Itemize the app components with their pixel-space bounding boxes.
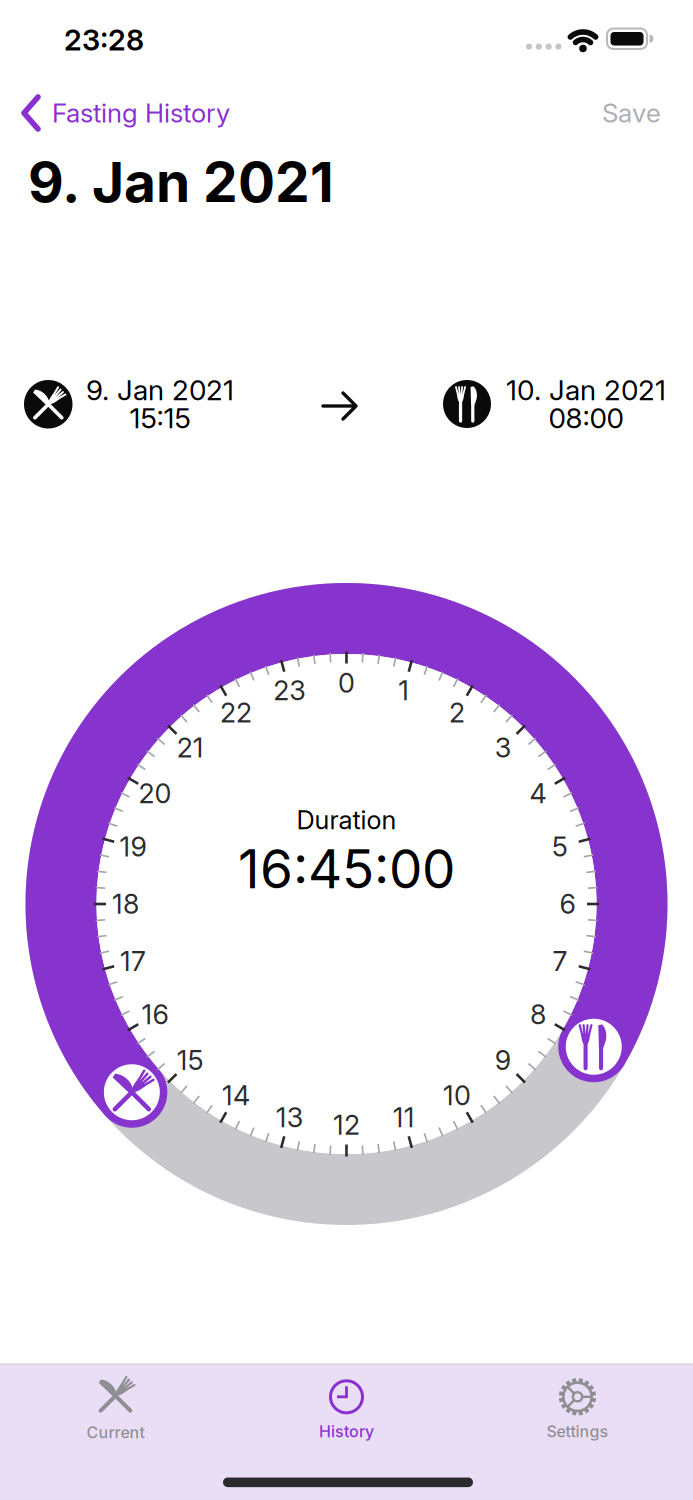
staticText: 20 [139,777,172,810]
staticText: 23:28 [64,22,144,58]
staticText: 5 [552,830,568,863]
staticText: 17 [120,945,146,978]
staticText: Fasting History [52,97,230,129]
staticText: 21 [177,731,204,764]
staticText: 13 [276,1101,303,1134]
staticText: 9. Jan 2021 [28,149,334,215]
staticText: 19 [119,830,146,863]
button[interactable] [566,1019,622,1075]
staticText: 0 [338,667,355,699]
button[interactable]: Settings [546,1377,608,1441]
button[interactable]: Current [86,1376,144,1442]
button[interactable]: Fasting History [21,95,230,131]
staticText: 16 [142,998,169,1031]
staticText: 3 [495,731,511,764]
staticText: 7 [552,945,567,978]
staticText: 16:45:00 [238,837,455,901]
staticText: 9 [495,1044,511,1077]
button[interactable] [104,1064,160,1120]
staticText: 8 [530,998,546,1031]
button[interactable]: History [319,1377,374,1441]
staticText: 2 [449,696,465,729]
staticText: 08:00 [548,401,623,435]
staticText: 15:15 [129,401,190,435]
staticText: Settings [546,1422,608,1441]
staticText: 9. Jan 2021 [86,373,234,407]
staticText: 12 [333,1109,360,1141]
staticText: History [319,1422,374,1441]
staticText: Current [86,1423,144,1442]
staticText: Duration [296,805,396,835]
staticText: 18 [112,888,139,920]
staticText: 15 [177,1044,204,1077]
staticText: 22 [220,696,252,729]
staticText: 14 [222,1079,250,1112]
staticText: 10. Jan 2021 [506,373,666,407]
staticText: 1 [398,674,409,707]
staticText: 4 [529,777,546,810]
staticText: Save [602,97,661,129]
staticText: 23 [273,674,305,707]
staticText: 6 [559,888,575,920]
button[interactable]: Save [602,97,661,129]
staticText: 10 [443,1079,471,1112]
staticText: 11 [393,1101,415,1134]
